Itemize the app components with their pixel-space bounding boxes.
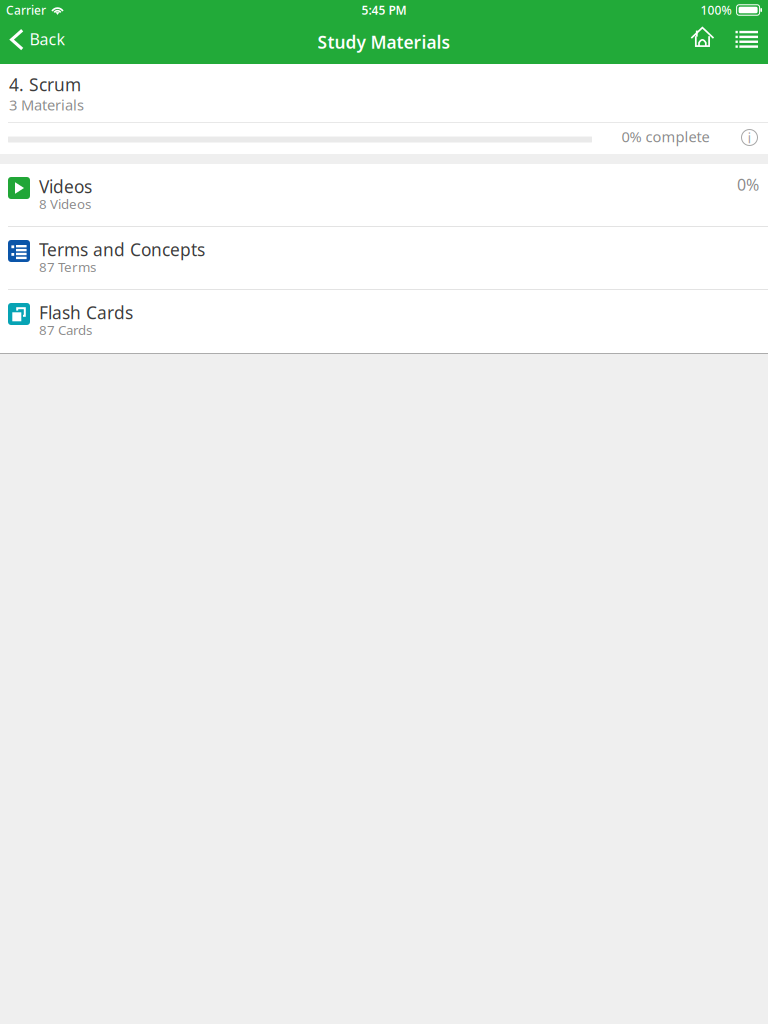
staticText: Back [29,28,65,50]
button[interactable]: Home [679,20,724,64]
staticText: Terms and Concepts [39,238,205,261]
staticText: 3 Materials [9,95,84,114]
staticText: 100% [701,2,732,18]
staticText: Videos [39,175,92,198]
staticText: Study Materials [317,30,450,53]
staticText: 8 Videos [39,195,91,213]
staticText: i [747,128,751,147]
button[interactable]: Menu [724,20,768,64]
button[interactable]: Flash Cards [0,290,768,353]
button[interactable]: Terms and Concepts [0,227,768,290]
staticText: 0% [737,174,759,195]
staticText: 5:45 PM [361,2,406,18]
staticText: 87 Cards [39,321,92,339]
staticText: 4. Scrum [9,73,81,96]
button[interactable]: Videos [0,164,768,227]
staticText: 87 Terms [39,258,96,276]
staticText: 0% complete [621,127,709,146]
staticText: Flash Cards [39,301,133,324]
button[interactable]: Back [0,20,75,64]
staticText: Carrier [6,2,46,18]
button[interactable]: Info [741,129,758,148]
